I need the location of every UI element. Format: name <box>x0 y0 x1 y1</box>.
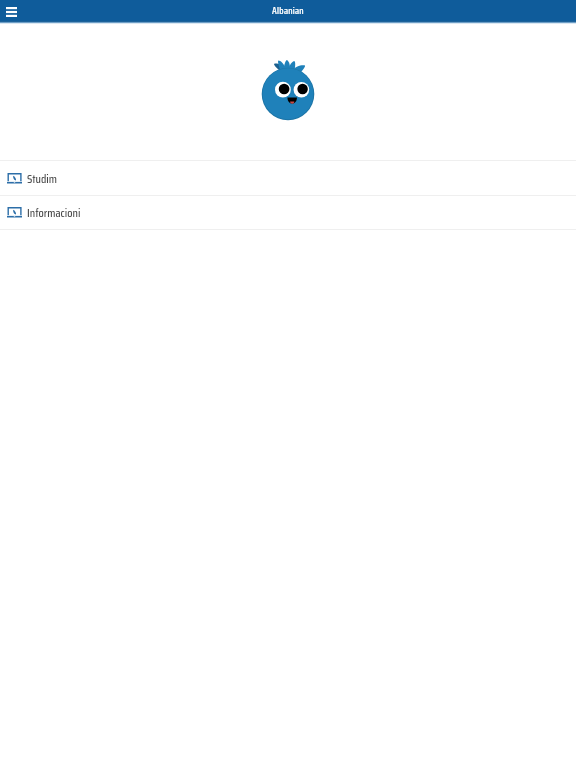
button[interactable]: Open navigation drawer <box>0 0 22 21</box>
button[interactable]: Informacioni <box>0 196 576 229</box>
button[interactable]: Studim <box>0 162 576 195</box>
staticText: Albanian <box>272 3 304 18</box>
staticText: Informacioni <box>27 203 81 222</box>
staticText: Studim <box>27 169 58 188</box>
